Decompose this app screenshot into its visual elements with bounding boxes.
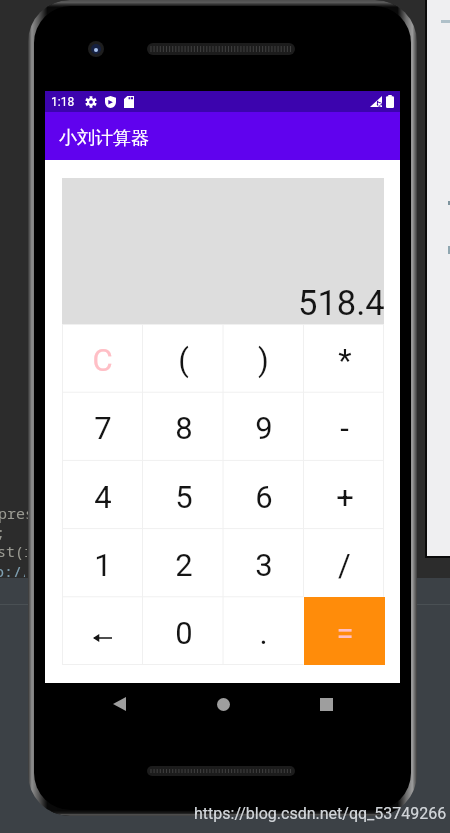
- button[interactable]: 9: [223, 392, 304, 460]
- staticText: +: [336, 479, 354, 515]
- button[interactable]: 8: [143, 392, 224, 460]
- button[interactable]: 6: [223, 461, 304, 529]
- staticText: =: [336, 615, 354, 651]
- staticText: 2: [175, 547, 193, 583]
- staticText: ): [258, 342, 269, 378]
- staticText: C: [92, 342, 113, 378]
- staticText: /: [338, 547, 351, 583]
- staticText: (: [178, 342, 189, 378]
- staticText: 7: [94, 410, 112, 446]
- button[interactable]: .: [223, 597, 304, 665]
- staticText: 4: [94, 479, 112, 515]
- staticText: o://: [0, 561, 25, 578]
- staticText: 0: [175, 615, 193, 651]
- staticText: https://blog.csdn.net/qq_53749266: [194, 804, 447, 823]
- staticText: st(i: [0, 541, 27, 561]
- button[interactable]: -: [304, 392, 385, 460]
- staticText: 1: [94, 547, 112, 583]
- staticText: pres: [0, 503, 28, 523]
- staticText: 5: [175, 479, 193, 515]
- staticText: 8: [175, 410, 193, 446]
- button[interactable]: 0: [143, 597, 224, 665]
- button[interactable]: Recents: [309, 687, 343, 721]
- button[interactable]: Back: [102, 687, 136, 721]
- button[interactable]: ): [223, 324, 304, 392]
- button[interactable]: C: [62, 324, 143, 392]
- staticText: 1:18: [51, 95, 75, 109]
- button[interactable]: (: [143, 324, 224, 392]
- staticText: .: [259, 615, 268, 651]
- button[interactable]: 4: [62, 461, 143, 529]
- staticText: 9: [255, 410, 273, 446]
- staticText: 3: [255, 547, 273, 583]
- staticText: 小刘计算器: [59, 127, 149, 150]
- button[interactable]: Home: [206, 687, 240, 721]
- button[interactable]: 2: [143, 529, 224, 597]
- button[interactable]: [62, 597, 143, 665]
- staticText: *: [338, 342, 352, 378]
- button[interactable]: /: [304, 529, 385, 597]
- staticText: 518.4: [298, 283, 385, 323]
- button[interactable]: *: [304, 324, 385, 392]
- button[interactable]: 7: [62, 392, 143, 460]
- staticText: 6: [255, 479, 273, 515]
- button[interactable]: +: [304, 461, 385, 529]
- button[interactable]: 3: [223, 529, 304, 597]
- button[interactable]: 1: [62, 529, 143, 597]
- button[interactable]: 5: [143, 461, 224, 529]
- button[interactable]: =: [304, 597, 385, 665]
- staticText: -: [340, 410, 349, 446]
- staticText: ;: [0, 522, 26, 542]
